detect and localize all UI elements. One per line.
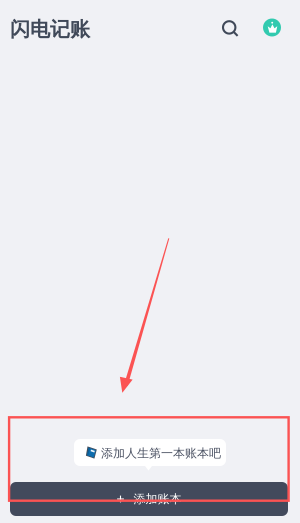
- staticText: 闪电记账: [10, 17, 90, 42]
- button[interactable]: Search: [212, 11, 246, 45]
- button[interactable]: 添加账本: [10, 482, 288, 516]
- staticText: 添加人生第一本账本吧: [101, 446, 221, 461]
- button[interactable]: Membership: [255, 11, 289, 45]
- staticText: 添加账本: [133, 492, 181, 506]
